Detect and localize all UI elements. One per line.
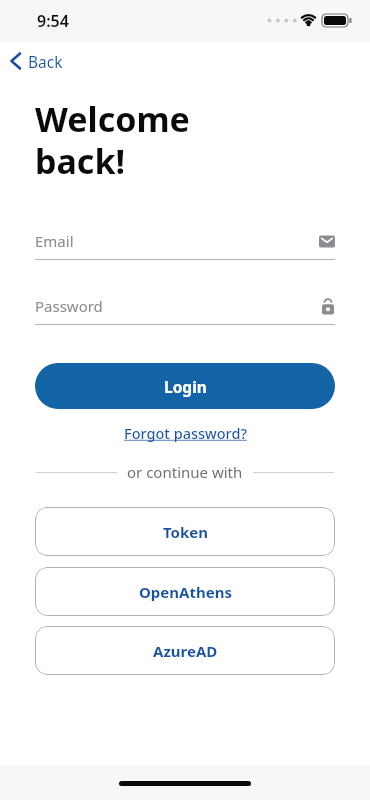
staticText: Login bbox=[164, 376, 207, 397]
staticText: Password bbox=[35, 296, 103, 316]
button[interactable]: Forgot password? bbox=[124, 423, 247, 443]
staticText: Email bbox=[35, 231, 74, 251]
staticText: OpenAthens bbox=[139, 582, 232, 602]
staticText: AzureAD bbox=[153, 641, 218, 661]
button[interactable]: Login bbox=[35, 363, 335, 409]
button[interactable]: Back bbox=[0, 42, 370, 80]
staticText: Back bbox=[28, 51, 63, 72]
staticText: Token bbox=[163, 522, 208, 542]
staticText: or continue with bbox=[127, 462, 243, 482]
staticText: Welcome back! bbox=[35, 96, 190, 184]
button[interactable]: Token bbox=[35, 507, 335, 556]
button[interactable]: AzureAD bbox=[35, 626, 335, 675]
staticText: 9:54 bbox=[37, 10, 69, 32]
button[interactable]: OpenAthens bbox=[35, 567, 335, 616]
